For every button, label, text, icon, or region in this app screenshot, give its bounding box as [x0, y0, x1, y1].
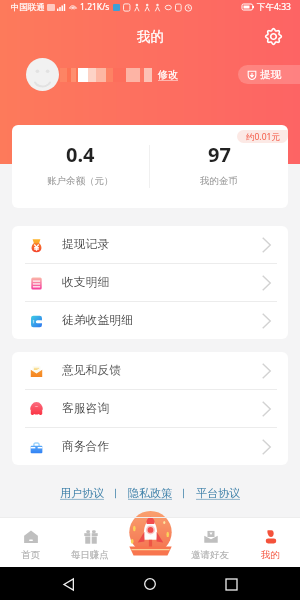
- button[interactable]: 每日赚点: [60, 518, 120, 567]
- button[interactable]: Settings: [263, 26, 283, 46]
- button[interactable]: 商务合作: [12, 428, 288, 465]
- staticText: 提现: [260, 68, 281, 81]
- staticText: 1.21K/s: [80, 1, 110, 13]
- staticText: 提现记录: [62, 237, 110, 252]
- button[interactable]: 首页: [0, 518, 60, 567]
- staticText: 意见和反馈: [62, 363, 121, 378]
- staticText: 首页: [21, 549, 40, 561]
- staticText: 收支明细: [62, 275, 110, 290]
- button[interactable]: 徒弟收益明细: [12, 302, 288, 339]
- button[interactable]: 修改: [158, 68, 178, 81]
- staticText: 约0.01元: [246, 131, 280, 143]
- staticText: 97: [208, 141, 231, 168]
- staticText: 平台协议: [196, 486, 240, 500]
- staticText: 隐私政策: [128, 486, 172, 500]
- staticText: 我的: [261, 549, 280, 561]
- staticText: 我的: [137, 28, 164, 45]
- staticText: 邀请好友: [191, 549, 229, 561]
- staticText: 丨: [111, 487, 121, 500]
- button[interactable]: 0.4: [12, 125, 149, 208]
- button[interactable]: 提现记录: [12, 226, 288, 263]
- button[interactable]: 邀请好友: [180, 518, 240, 567]
- staticText: 丨: [179, 487, 189, 500]
- staticText: 中国联通: [11, 2, 45, 13]
- button[interactable]: 我的: [240, 518, 300, 567]
- staticText: 商务合作: [62, 439, 110, 454]
- button[interactable]: 客服咨询: [12, 390, 288, 427]
- staticText: 下午4:33: [257, 1, 291, 13]
- button[interactable]: 每日任务: [123, 510, 177, 556]
- staticText: 我的金币: [200, 175, 238, 187]
- staticText: 客服咨询: [62, 401, 110, 416]
- button[interactable]: 平台协议: [196, 486, 240, 500]
- staticText: 修改: [158, 68, 178, 81]
- button[interactable]: 97: [150, 125, 288, 208]
- button[interactable]: 收支明细: [12, 264, 288, 301]
- button[interactable]: 隐私政策: [128, 486, 172, 500]
- staticText: 0.4: [66, 141, 95, 168]
- button[interactable]: Back: [57, 572, 81, 596]
- button[interactable]: Home: [138, 572, 162, 596]
- staticText: 用户协议: [60, 486, 104, 500]
- button[interactable]: [26, 58, 59, 91]
- staticText: 每日赚点: [71, 549, 109, 561]
- button[interactable]: 提现: [238, 65, 300, 84]
- button[interactable]: 意见和反馈: [12, 352, 288, 389]
- staticText: 徒弟收益明细: [62, 313, 133, 328]
- staticText: 账户余额（元）: [47, 175, 114, 187]
- button[interactable]: Recents: [219, 572, 243, 596]
- button[interactable]: 用户协议: [60, 486, 104, 500]
